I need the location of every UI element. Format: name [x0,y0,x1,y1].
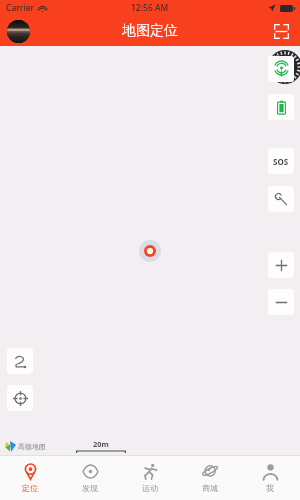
staticText: SOS [273,156,289,167]
staticText: 运动 [142,483,158,493]
staticText: 发现 [82,483,98,493]
button[interactable]: Emergency SOS [268,148,294,174]
button[interactable]: 商城 [180,456,240,500]
button[interactable]: Scan QR code [269,19,293,43]
button[interactable]: Zoom out [268,289,294,315]
button[interactable]: 我 [240,456,300,500]
button[interactable]: Speedometer [268,50,300,84]
button[interactable]: 定位 [0,456,60,500]
staticText: 商城 [202,483,218,493]
button[interactable]: My location [7,385,33,411]
staticText: 高德地图 [18,442,46,451]
button[interactable]: Track route [7,348,33,374]
staticText: 定位 [22,483,38,493]
staticText: 我 [266,483,274,493]
staticText: 地图定位 [122,22,178,40]
button[interactable]: 发现 [60,456,120,500]
button[interactable]: Settings [268,186,294,212]
staticText: Carrier [6,2,35,14]
button[interactable]: Zoom in [268,252,294,278]
button[interactable]: Signal strength [268,56,294,82]
button[interactable]: 运动 [120,456,180,500]
staticText: 12:56 AM [131,2,169,14]
button[interactable]: Battery level [268,94,294,120]
button[interactable]: Profile [7,20,30,43]
staticText: 20m [93,439,109,449]
